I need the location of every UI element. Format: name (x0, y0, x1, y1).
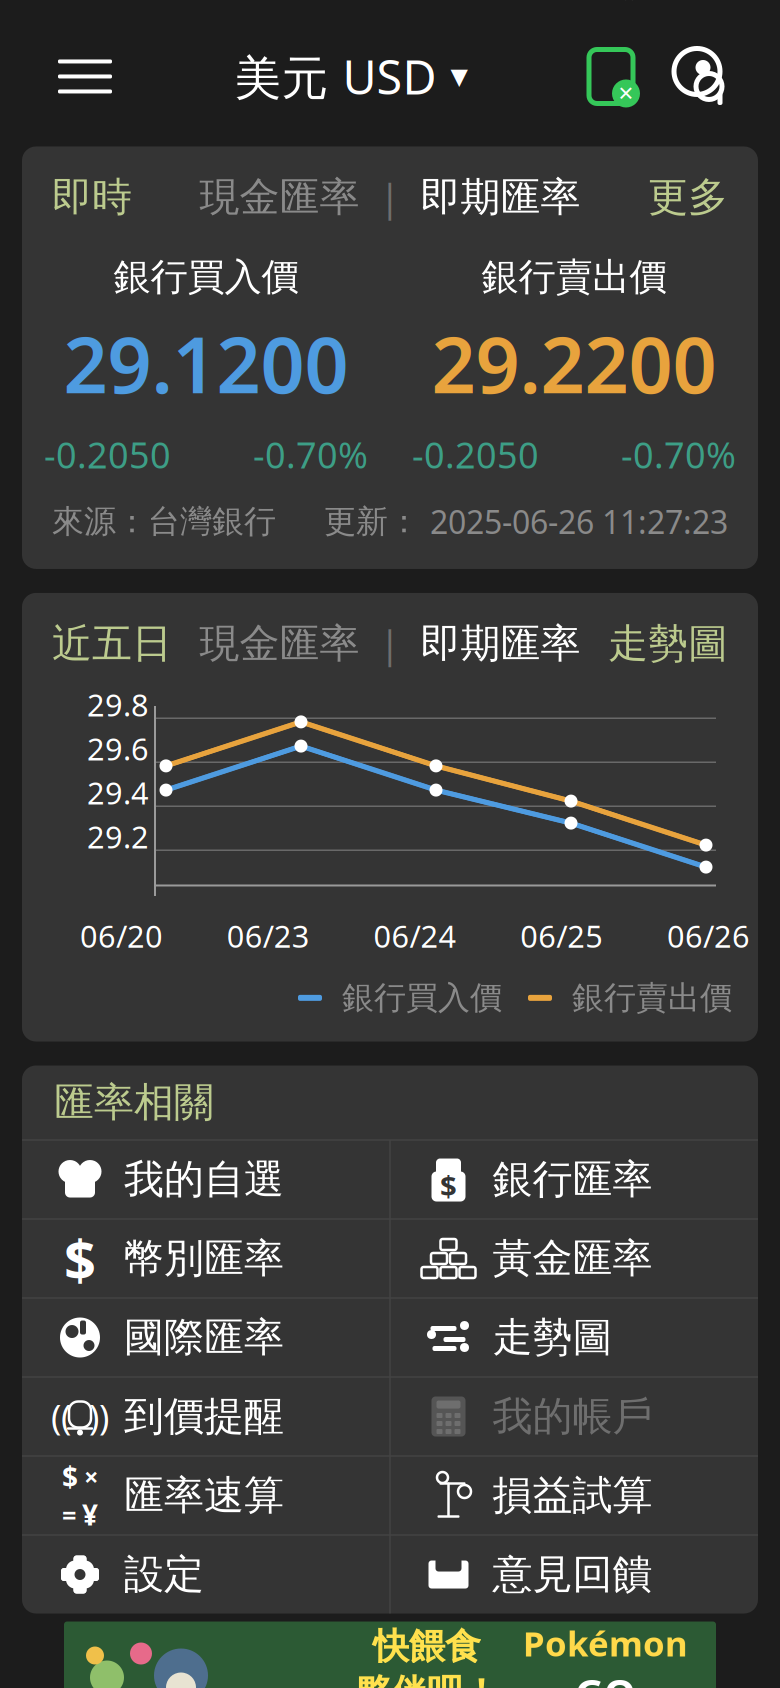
staticText: $ (64, 1221, 96, 1296)
staticText: 快餵食 (373, 1624, 481, 1668)
staticText: × (84, 1460, 98, 1493)
staticText: 我的自選 (124, 1155, 284, 1204)
staticText: 近五日 (52, 619, 172, 668)
staticText: 我的帳戶 (492, 1392, 652, 1441)
staticText: Pokémon (523, 1620, 688, 1666)
staticText: 現金匯率 (199, 619, 359, 668)
staticText: 06/24 (373, 915, 456, 956)
button[interactable]: 國際匯率 (22, 1298, 389, 1376)
staticText: 即期匯率 (420, 619, 580, 668)
staticText: 銀行買入價 (113, 254, 298, 300)
staticText: 黃金匯率 (492, 1234, 652, 1283)
staticText: 更新： (324, 502, 430, 541)
button[interactable]: (( (22, 1377, 389, 1455)
staticText: -0.70% (253, 431, 368, 478)
staticText: -0.2050 (44, 431, 171, 478)
staticText: 29.6 (87, 728, 149, 769)
staticText: 來源：台灣銀行 (52, 502, 276, 541)
staticText: 銀行匯率 (492, 1155, 652, 1204)
button[interactable]: 現金匯率 (199, 619, 359, 668)
staticText: -0.2050 (412, 431, 539, 478)
staticText: ✕ (617, 82, 634, 105)
button[interactable]: 設定 (22, 1535, 389, 1613)
staticText: 銀行買入價 (322, 978, 502, 1017)
button[interactable]: Disconnect (574, 38, 648, 114)
staticText: 國際匯率 (124, 1313, 284, 1362)
staticText: )) (89, 1393, 109, 1439)
button[interactable]: Menu (42, 38, 128, 114)
staticText: ▼ (450, 64, 467, 89)
button[interactable]: 走勢圖 (608, 619, 728, 668)
button[interactable]: 我的自選 (22, 1140, 389, 1218)
staticText: 銀行賣出價 (552, 978, 732, 1017)
button[interactable]: $ (390, 1140, 758, 1218)
staticText: 現金匯率 (199, 173, 359, 222)
staticText: 走勢圖 (492, 1313, 612, 1362)
button[interactable]: 更多 (648, 173, 728, 222)
button[interactable]: Advertisement (64, 1621, 716, 1688)
staticText: (( (51, 1393, 71, 1439)
button[interactable]: 現金匯率 (199, 173, 359, 222)
staticText: 06/26 (667, 915, 750, 956)
button[interactable]: $ (22, 1219, 389, 1297)
button[interactable]: 走勢圖 (390, 1298, 758, 1376)
staticText: -0.70% (621, 431, 736, 478)
staticText: 2025-06-26 11:27:23 (430, 500, 728, 543)
button[interactable]: 美元 USD (234, 38, 467, 114)
staticText: 幣別匯率 (124, 1234, 284, 1283)
staticText: 29.4 (87, 772, 149, 813)
staticText: 29.2 (87, 816, 149, 857)
staticText: 設定 (124, 1550, 204, 1599)
button[interactable]: $ (22, 1456, 389, 1534)
staticText: $ (62, 1458, 78, 1495)
staticText: 06/25 (520, 915, 603, 956)
button[interactable]: 黃金匯率 (390, 1219, 758, 1297)
staticText: = (62, 1498, 76, 1531)
staticText: 29.2200 (431, 312, 716, 415)
staticText: 夥伴吧！ (355, 1670, 499, 1688)
staticText: 29.8 (87, 684, 149, 725)
staticText: 06/23 (227, 915, 310, 956)
button[interactable]: 我的帳戶 (390, 1377, 758, 1455)
staticText: 匯率相關 (54, 1078, 214, 1127)
staticText: ¥ (82, 1496, 98, 1533)
staticText: 更多 (648, 173, 728, 222)
staticText: $ (440, 1166, 457, 1205)
button[interactable]: 意見回饋 (390, 1535, 758, 1613)
staticText: 美元 USD (234, 45, 436, 107)
staticText: | (359, 619, 420, 668)
staticText: 29.1200 (63, 312, 348, 415)
staticText: 走勢圖 (608, 619, 728, 668)
staticText: 06/20 (80, 915, 163, 956)
button[interactable]: Search (648, 38, 738, 114)
button[interactable]: 即期匯率 (420, 173, 580, 222)
button[interactable]: 損益試算 (390, 1456, 758, 1534)
staticText: | (359, 172, 420, 222)
staticText: 即期匯率 (420, 173, 580, 222)
staticText: 到價提醒 (124, 1392, 284, 1441)
staticText: 即時 (52, 173, 132, 222)
staticText: 損益試算 (492, 1471, 652, 1520)
staticText: 銀行賣出價 (481, 254, 666, 300)
staticText: 匯率速算 (124, 1471, 284, 1520)
staticText: 意見回饋 (492, 1550, 652, 1599)
staticText: GO (575, 1666, 636, 1688)
button[interactable]: 即期匯率 (420, 619, 580, 668)
